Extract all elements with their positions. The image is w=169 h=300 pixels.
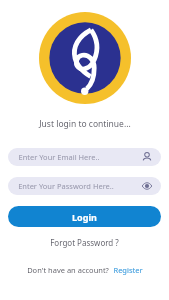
other: Account xyxy=(141,151,153,163)
staticText: Login xyxy=(72,211,97,223)
button[interactable]: Enter Your Email Here.. xyxy=(8,148,161,166)
button[interactable]: Enter Your Password Here.. xyxy=(8,177,161,195)
button[interactable]: Don't have an account? xyxy=(23,263,147,277)
staticText: Just login to continue... xyxy=(39,118,131,130)
staticText: Register xyxy=(113,265,143,275)
button[interactable]: Login xyxy=(8,206,161,227)
staticText: Enter Your Password Here.. xyxy=(18,181,114,191)
staticText: Don't have an account? xyxy=(27,265,109,275)
button[interactable]: Forgot Password ? xyxy=(44,235,125,250)
other: Show password xyxy=(141,180,153,192)
staticText: Enter Your Email Here.. xyxy=(18,152,100,162)
staticText: Forgot Password ? xyxy=(50,237,119,248)
